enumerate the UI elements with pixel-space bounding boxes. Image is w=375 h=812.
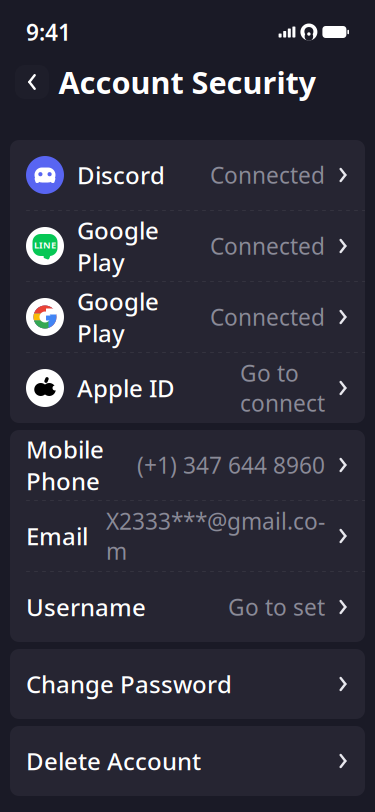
- staticText: 9:41: [26, 17, 71, 47]
- staticText: Connected: [210, 231, 325, 261]
- staticText: Connected: [210, 160, 325, 190]
- button[interactable]: Back: [10, 60, 54, 104]
- button[interactable]: Discord: [10, 140, 365, 210]
- staticText: Apple ID: [77, 372, 175, 404]
- staticText: Delete Account: [26, 745, 201, 777]
- staticText: Account Security: [58, 62, 316, 102]
- button[interactable]: Username: [10, 572, 365, 642]
- button[interactable]: Apple ID: [10, 353, 365, 423]
- staticText: Go to connect: [240, 358, 325, 418]
- button[interactable]: Change Password: [10, 649, 365, 719]
- staticText: Change Password: [26, 668, 232, 700]
- button[interactable]: Mobile Phone: [10, 430, 365, 500]
- button[interactable]: Delete Account: [10, 726, 365, 796]
- staticText: Discord: [77, 159, 165, 191]
- staticText: X2333***@gmail.com: [106, 506, 325, 566]
- staticText: Email: [26, 520, 88, 552]
- staticText: Connected: [210, 302, 325, 332]
- staticText: Mobile Phone: [26, 433, 104, 497]
- button[interactable]: Google Play: [10, 282, 365, 352]
- staticText: (+1) 347 644 8960: [137, 450, 325, 480]
- button[interactable]: LINE: [10, 211, 365, 281]
- staticText: LINE: [34, 239, 56, 251]
- button[interactable]: Email: [10, 501, 365, 571]
- staticText: Username: [26, 591, 146, 623]
- staticText: Google Play: [77, 285, 159, 349]
- staticText: Go to set: [228, 592, 325, 622]
- staticText: Google Play: [77, 214, 159, 278]
